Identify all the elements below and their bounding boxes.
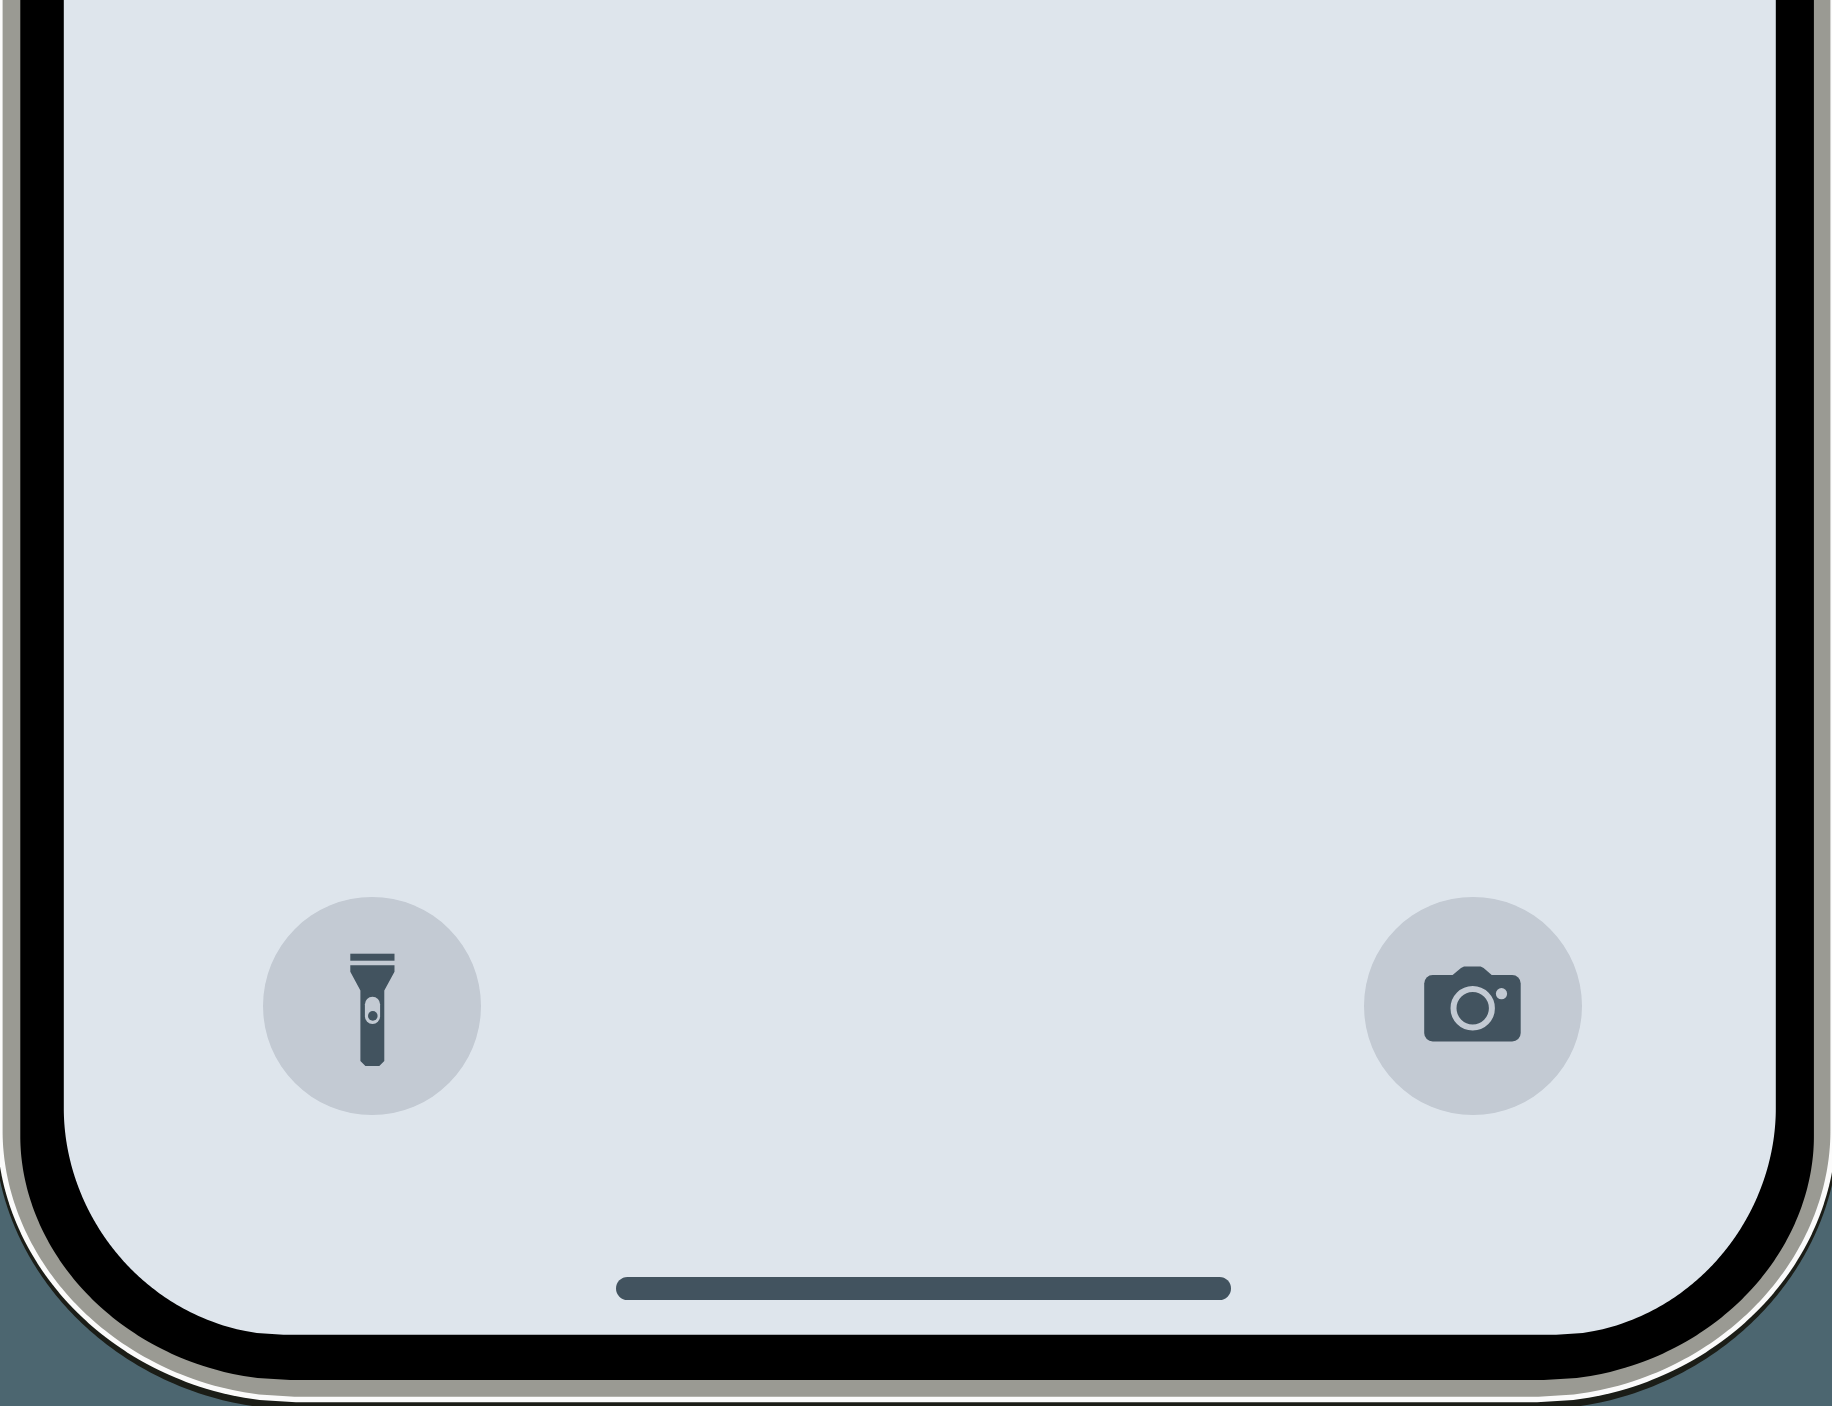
- button[interactable]: Camera: [1364, 897, 1582, 1115]
- button[interactable]: Flashlight: [263, 897, 481, 1115]
- button[interactable]: Home: [616, 1277, 1231, 1300]
